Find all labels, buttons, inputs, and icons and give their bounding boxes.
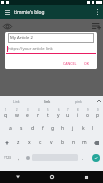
staticText: y [57, 112, 60, 119]
staticText: w [15, 112, 19, 119]
staticText: m [82, 139, 87, 146]
staticText: 6 [58, 108, 60, 112]
button[interactable]: Home [35, 171, 69, 183]
button[interactable]: c [35, 135, 46, 150]
button[interactable]: https://your article link [6, 44, 96, 54]
staticText: n [72, 139, 76, 146]
button[interactable]: 2 [11, 106, 22, 121]
staticText: i [77, 112, 79, 119]
button[interactable]: f [38, 121, 48, 135]
staticText: link [44, 99, 51, 104]
button[interactable]: d [27, 121, 38, 135]
staticText: OK [84, 61, 89, 66]
button[interactable]: 9 [83, 106, 93, 121]
button[interactable]: Shift [0, 135, 13, 150]
button[interactable]: Link [0, 96, 32, 106]
button[interactable]: Back [0, 171, 35, 183]
staticText: 8 [77, 108, 79, 112]
button[interactable]: x [24, 135, 35, 150]
staticText: h [61, 125, 65, 132]
button[interactable]: Period [78, 150, 88, 165]
staticText: 3 [27, 108, 29, 112]
staticText: 7 [67, 108, 69, 112]
button[interactable]: z [13, 135, 24, 150]
button[interactable]: a [5, 121, 16, 135]
button[interactable]: More suggestions [94, 96, 103, 106]
staticText: l [92, 125, 94, 132]
staticText: 2 [16, 108, 18, 112]
staticText: 0 [97, 108, 99, 112]
button[interactable]: Enter [88, 150, 103, 165]
staticText: timmie's blog [14, 9, 45, 16]
staticText: e [26, 112, 29, 119]
button[interactable]: ?123 [0, 150, 14, 165]
staticText: j [72, 125, 74, 132]
button[interactable]: My Article 2 [8, 33, 94, 43]
button[interactable]: Add article [90, 20, 102, 32]
staticText: 5 [47, 108, 49, 112]
button[interactable]: link [32, 96, 63, 106]
staticText: f [42, 125, 44, 132]
button[interactable]: Comma [14, 150, 23, 165]
staticText: r [37, 112, 40, 119]
button[interactable]: More options [92, 5, 103, 19]
button[interactable]: 4 [33, 106, 43, 121]
button[interactable]: 1 [0, 106, 11, 121]
button[interactable]: pink [63, 96, 94, 106]
staticText: CANCEL [63, 61, 77, 66]
button[interactable]: m [79, 135, 90, 150]
staticText: u [66, 112, 70, 119]
staticText: . [82, 155, 84, 161]
staticText: ?123 [4, 156, 11, 160]
staticText: https://your article link [8, 46, 53, 52]
button[interactable]: h [58, 121, 68, 135]
staticText: a [9, 125, 12, 132]
button[interactable]: CANCEL [61, 60, 79, 67]
button[interactable]: 3 [22, 106, 33, 121]
staticText: b [61, 139, 65, 146]
staticText: 1 [5, 108, 7, 112]
staticText: o [86, 112, 90, 119]
staticText: z [17, 139, 20, 146]
button[interactable]: 7 [63, 106, 73, 121]
button[interactable]: l [88, 121, 98, 135]
button[interactable]: Emoji [23, 150, 32, 165]
button[interactable]: OK [82, 60, 91, 67]
staticText: q [4, 112, 8, 119]
staticText: s [20, 125, 23, 132]
staticText: p [96, 112, 100, 119]
button[interactable]: Preview [1, 20, 13, 32]
button[interactable]: j [68, 121, 78, 135]
button[interactable]: n [68, 135, 79, 150]
staticText: x [28, 139, 31, 146]
staticText: My Article 2 [10, 35, 33, 41]
button[interactable]: Recent apps [69, 171, 103, 183]
staticText: k [82, 125, 85, 132]
button[interactable]: 8 [73, 106, 83, 121]
button[interactable]: Backspace [90, 135, 103, 150]
button[interactable]: 0 [93, 106, 103, 121]
button[interactable]: Open navigation menu [0, 5, 14, 19]
staticText: d [31, 125, 35, 132]
staticText: 4 [38, 108, 40, 112]
staticText: v [50, 139, 53, 146]
staticText: Link [13, 99, 20, 104]
staticText: g [51, 125, 55, 132]
staticText: c [39, 139, 42, 146]
button[interactable]: s [16, 121, 27, 135]
staticText: , [18, 155, 20, 161]
staticText: t [47, 112, 49, 119]
button[interactable]: v [46, 135, 57, 150]
button[interactable]: 5 [43, 106, 53, 121]
button[interactable]: g [48, 121, 58, 135]
button[interactable]: k [78, 121, 88, 135]
button[interactable]: 6 [53, 106, 63, 121]
staticText: 9 [87, 108, 89, 112]
staticText: pink [75, 99, 82, 104]
button[interactable]: b [57, 135, 68, 150]
